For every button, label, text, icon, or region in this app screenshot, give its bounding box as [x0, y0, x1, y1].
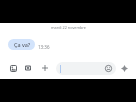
staticText: 13:36 — [38, 44, 50, 50]
button[interactable]: Camera — [22, 62, 34, 74]
button[interactable]: Ça va? — [8, 39, 35, 50]
button[interactable]: Sticker — [118, 62, 130, 74]
staticText: mardi 22 novembre — [51, 25, 86, 30]
button[interactable]: Add — [39, 62, 51, 74]
button[interactable]: Emoji — [102, 62, 114, 74]
button[interactable] — [56, 62, 116, 75]
button[interactable]: Gallery — [7, 62, 19, 74]
staticText: Ça va? — [14, 41, 31, 48]
